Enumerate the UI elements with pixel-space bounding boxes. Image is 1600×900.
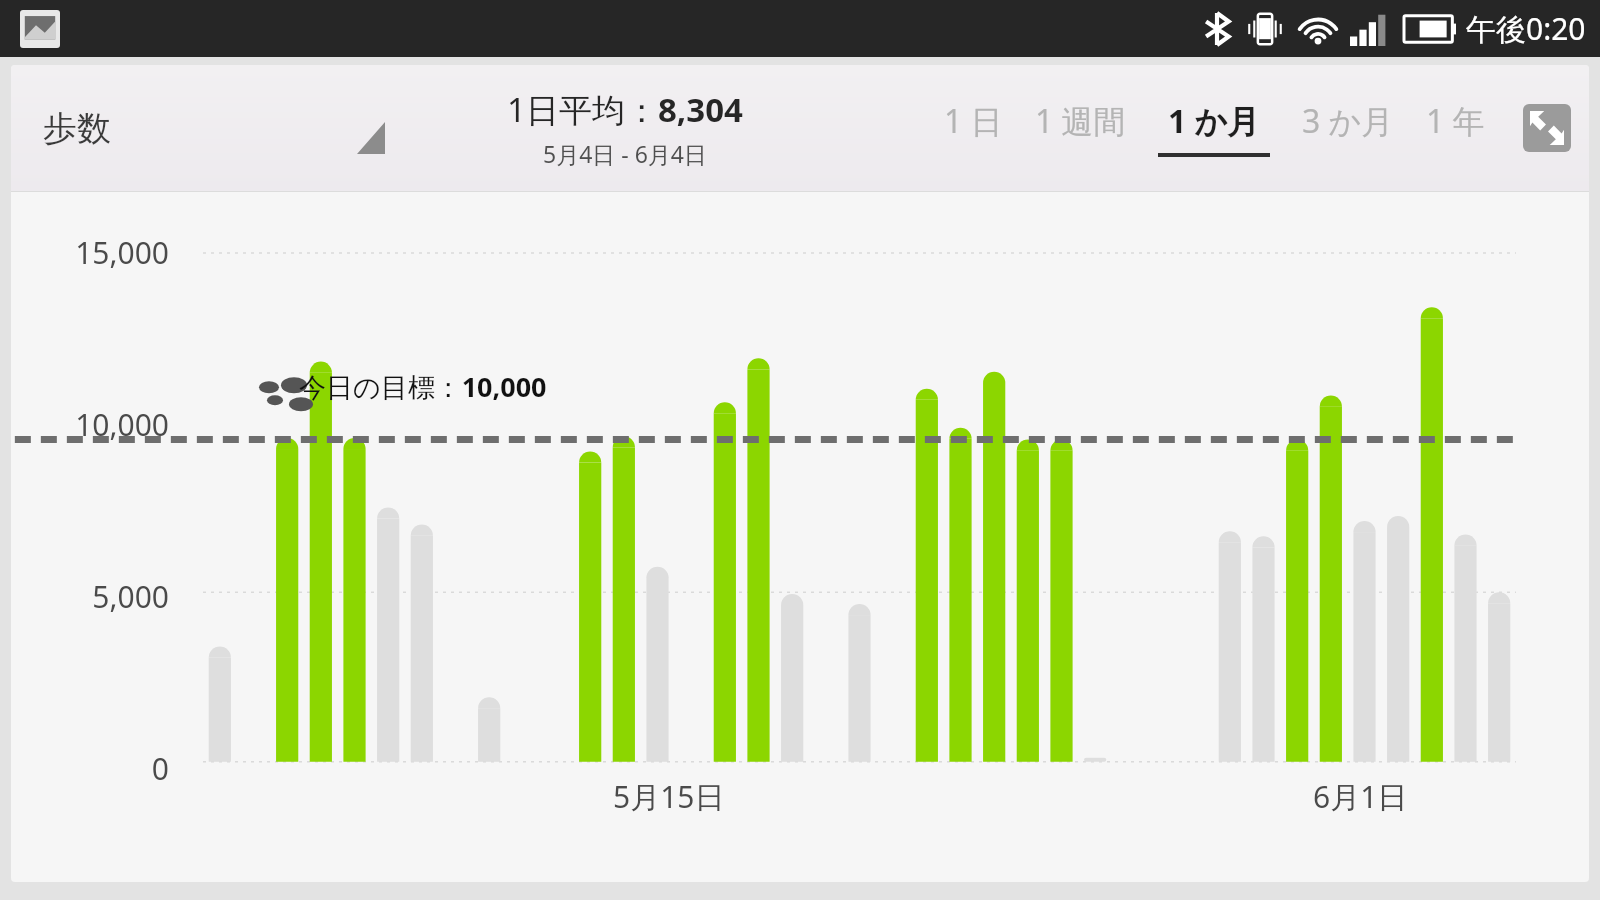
button[interactable]: 1 日	[928, 99, 1019, 157]
staticText: 1 か月	[1168, 99, 1260, 143]
staticText: 歩数	[43, 107, 111, 150]
button[interactable]: Collapse	[1523, 104, 1571, 152]
button[interactable]: 歩数	[43, 107, 385, 150]
button[interactable]: 1 週間	[1019, 99, 1142, 157]
other: Notification	[20, 10, 60, 48]
staticText: 午後0:20	[1466, 8, 1586, 49]
staticText: 1 日	[944, 99, 1003, 143]
staticText: 3 か月	[1302, 99, 1394, 143]
staticText: 今日の目標：10,000	[299, 368, 547, 405]
button[interactable]: 1 か月	[1142, 99, 1286, 157]
staticText: 0	[151, 748, 169, 789]
staticText: 10,000	[75, 404, 169, 445]
staticText: 6月1日	[1313, 776, 1408, 817]
button[interactable]: 1 年	[1410, 99, 1501, 157]
staticText: 5,000	[92, 576, 169, 617]
staticText: 5月15日	[613, 776, 725, 817]
button[interactable]: 3 か月	[1286, 99, 1410, 157]
staticText: 15,000	[75, 232, 169, 273]
staticText: 5月4日 - 6月4日	[543, 138, 707, 169]
staticText: 1日平均：8,304	[507, 87, 743, 132]
staticText: 1 年	[1426, 99, 1485, 143]
staticText: 1 週間	[1035, 99, 1126, 143]
